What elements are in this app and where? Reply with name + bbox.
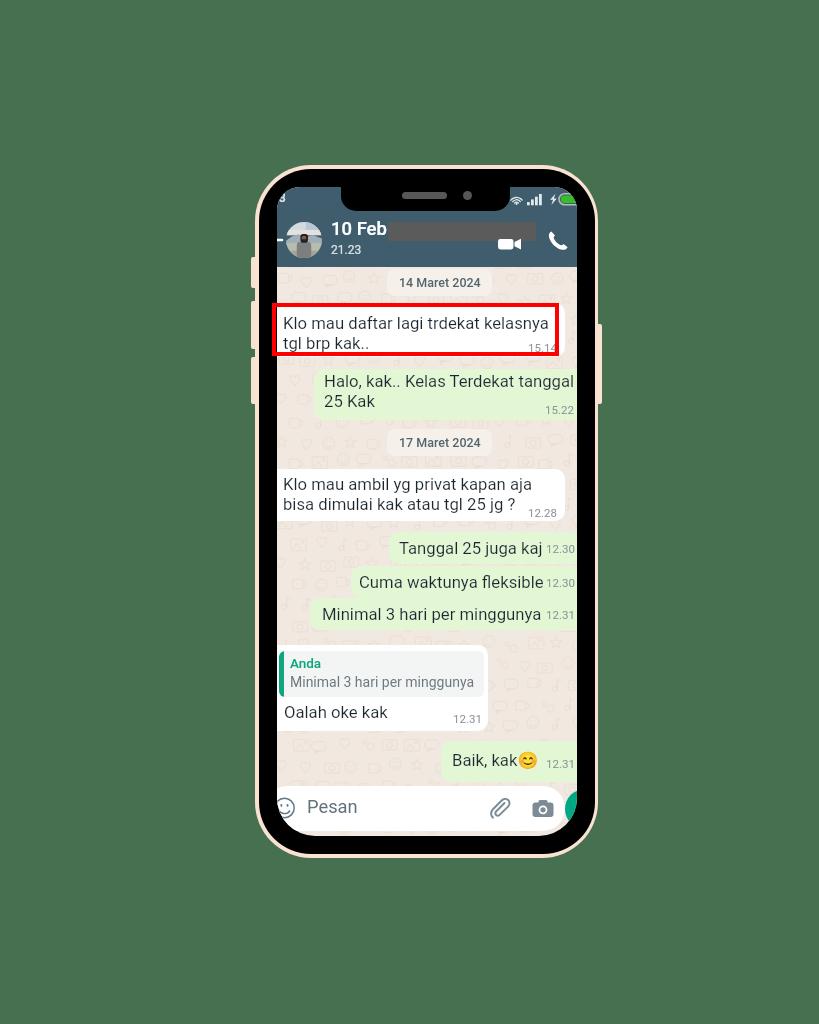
staticText: Baik, kak😊 — [452, 751, 539, 771]
button[interactable]: Klo mau daftar lagi trdekat kelasnya — [277, 303, 565, 357]
staticText: Klo mau daftar lagi trdekat kelasnya — [283, 314, 549, 334]
button[interactable]: Minimal 3 hari per minggunya — [310, 598, 577, 630]
staticText: 25 Kak — [324, 392, 375, 412]
button[interactable]: Baik, kak😊 — [441, 741, 577, 782]
button[interactable]: Back — [277, 228, 289, 252]
button[interactable]: Cuma waktunya fleksible — [351, 566, 577, 598]
staticText: 17 Maret 2024 — [399, 435, 481, 450]
button[interactable]: Emoji — [277, 798, 295, 819]
button[interactable]: Video call — [492, 228, 526, 260]
staticText: Minimal 3 hari per minggunya — [322, 605, 542, 625]
staticText: 10 Feb — [331, 218, 387, 240]
button[interactable]: Voice call — [543, 225, 573, 256]
staticText: 3 — [279, 191, 286, 205]
button[interactable]: Klo mau ambil yg privat kapan aja — [277, 469, 565, 521]
button[interactable]: Camera — [530, 796, 556, 822]
staticText: Anda — [290, 655, 322, 671]
staticText: 14 Maret 2024 — [399, 275, 481, 290]
button[interactable]: Emoji — [277, 786, 565, 831]
button[interactable]: Profile photo — [286, 222, 322, 258]
staticText: 12.30 — [546, 576, 575, 589]
staticText: Oalah oke kak — [284, 703, 388, 723]
staticText: 12.30 — [546, 542, 575, 555]
staticText: 12.28 — [528, 506, 557, 519]
button[interactable]: Anda — [277, 645, 488, 731]
button[interactable]: Attach — [487, 795, 513, 821]
staticText: Klo mau ambil yg privat kapan aja — [283, 475, 533, 495]
staticText: 15.14 — [528, 341, 557, 354]
staticText: 12.31 — [546, 757, 575, 770]
staticText: bisa dimulai kak atau tgl 25 jg ? — [283, 495, 516, 515]
staticText: Cuma waktunya fleksible — [359, 573, 544, 593]
button[interactable]: Tanggal 25 juga kaj — [389, 532, 577, 564]
staticText: Minimal 3 hari per minggunya — [290, 674, 475, 690]
staticText: Halo, kak.. Kelas Terdekat tanggal y — [324, 372, 577, 392]
button[interactable]: Send — [565, 789, 577, 829]
staticText: Tanggal 25 juga kaj — [399, 539, 543, 559]
staticText: 12.31 — [546, 608, 575, 621]
staticText: 21.23 — [331, 243, 362, 257]
staticText: Pesan — [307, 796, 358, 817]
staticText: tgl brp kak.. — [283, 334, 370, 354]
staticText: 12.31 — [453, 712, 482, 725]
button[interactable]: Halo, kak.. Kelas Terdekat tanggal y — [314, 369, 577, 420]
staticText: 15.22 — [545, 403, 574, 416]
